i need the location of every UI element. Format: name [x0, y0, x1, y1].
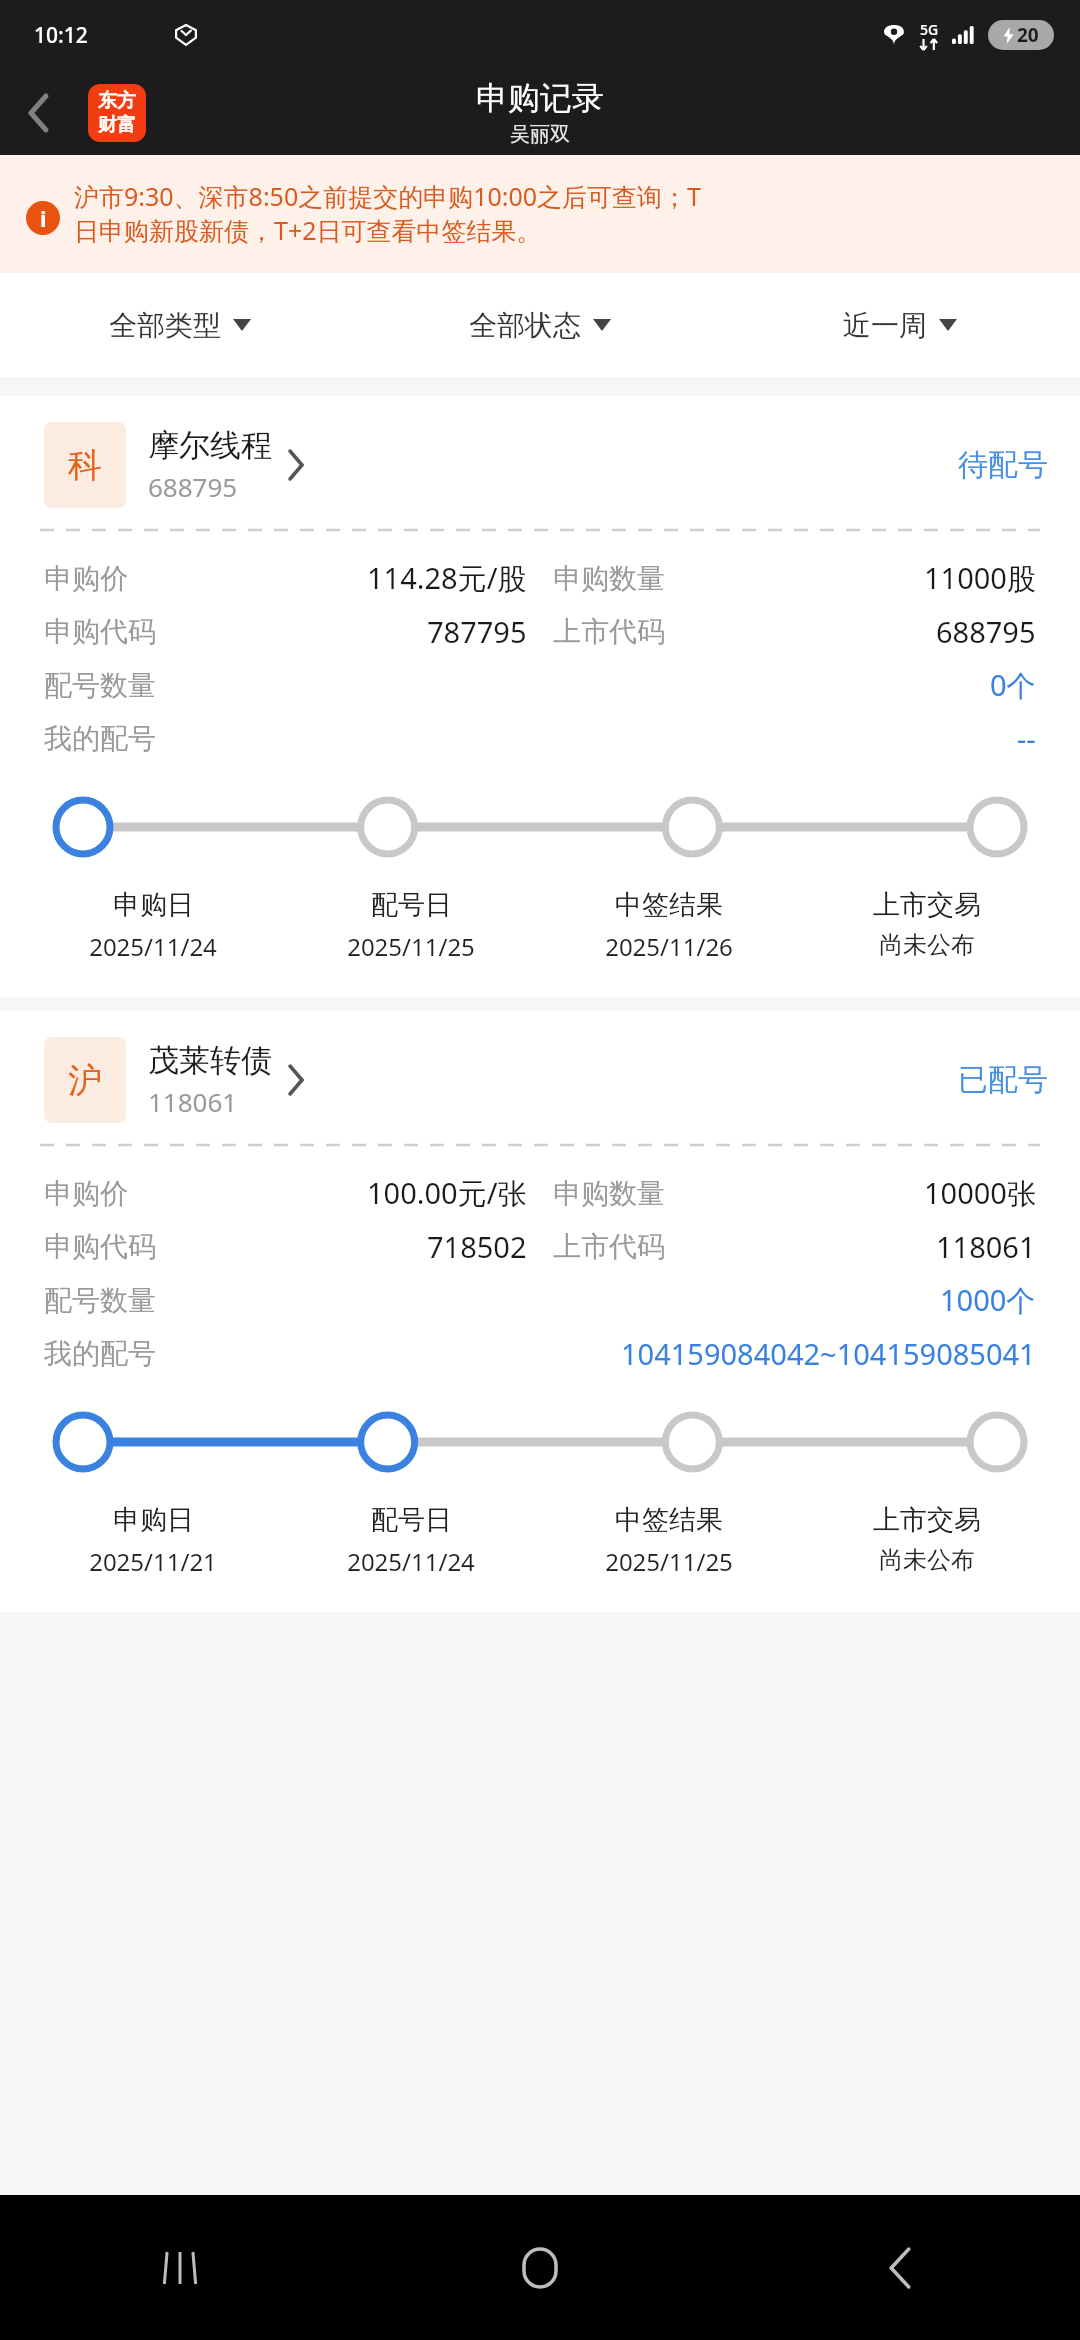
- staticText: 已配号: [958, 1061, 1048, 1099]
- staticText: 全部类型: [109, 308, 221, 343]
- staticText: 日申购新股新债，T+2日可查看中签结果。: [74, 213, 542, 247]
- staticText: 尚未公布: [879, 1545, 975, 1575]
- staticText: 全部状态: [469, 308, 581, 343]
- staticText: 0个: [990, 665, 1036, 705]
- staticText: 上市代码: [553, 1229, 665, 1264]
- staticText: 待配号: [958, 446, 1048, 484]
- staticText: 申购日: [113, 1503, 194, 1537]
- button[interactable]: 东方: [88, 84, 146, 142]
- staticText: 5G: [920, 20, 939, 39]
- button[interactable]: Recents: [0, 2195, 360, 2340]
- staticText: 申购代码: [44, 614, 156, 649]
- staticText: 11000股: [924, 558, 1036, 598]
- button[interactable]: 沪: [0, 1011, 1080, 1145]
- staticText: 近一周: [843, 308, 927, 343]
- staticText: 114.28元/股: [367, 558, 527, 598]
- button[interactable]: 近一周: [720, 273, 1080, 377]
- staticText: 中签结果: [615, 1503, 723, 1537]
- staticText: 104159084042~104159085041: [621, 1334, 1036, 1373]
- staticText: 配号数量: [44, 1283, 156, 1318]
- button[interactable]: Home: [360, 2195, 720, 2340]
- button[interactable]: 科: [0, 396, 1080, 530]
- staticText: 2025/11/25: [347, 930, 475, 963]
- staticText: 申购代码: [44, 1229, 156, 1264]
- staticText: 718502: [427, 1227, 527, 1266]
- staticText: 上市交易: [873, 888, 981, 922]
- staticText: --: [1017, 719, 1036, 758]
- staticText: 10000张: [924, 1173, 1036, 1213]
- staticText: 100.00元/张: [367, 1173, 527, 1213]
- staticText: 申购价: [44, 1176, 128, 1211]
- staticText: 2025/11/25: [605, 1545, 733, 1578]
- staticText: 118061: [936, 1227, 1036, 1266]
- staticText: 配号日: [371, 1503, 452, 1537]
- staticText: 2025/11/24: [347, 1545, 475, 1578]
- staticText: 10:12: [34, 21, 88, 50]
- staticText: 上市代码: [553, 614, 665, 649]
- staticText: 申购价: [44, 561, 128, 596]
- staticText: 我的配号: [44, 721, 156, 756]
- button[interactable]: 全部状态: [360, 273, 720, 377]
- staticText: 2025/11/24: [89, 930, 217, 963]
- staticText: 2025/11/21: [89, 1545, 217, 1578]
- staticText: 申购记录: [476, 78, 604, 118]
- staticText: 配号数量: [44, 668, 156, 703]
- staticText: 配号日: [371, 888, 452, 922]
- staticText: 吴丽双: [510, 122, 570, 147]
- staticText: 申购数量: [553, 1176, 665, 1211]
- staticText: 118061: [148, 1084, 238, 1119]
- staticText: 茂莱转债: [148, 1041, 272, 1080]
- staticText: 科: [68, 444, 102, 487]
- staticText: 沪: [68, 1059, 102, 1102]
- staticText: 中签结果: [615, 888, 723, 922]
- staticText: 787795: [427, 612, 527, 651]
- staticText: 688795: [148, 469, 238, 504]
- staticText: 摩尔线程: [148, 426, 272, 465]
- staticText: 东方: [98, 89, 136, 113]
- staticText: 20: [1017, 22, 1039, 48]
- staticText: 688795: [936, 612, 1036, 651]
- staticText: 沪市9:30、深市8:50之前提交的申购10:00之后可查询；T: [74, 179, 702, 213]
- staticText: 申购数量: [553, 561, 665, 596]
- staticText: 2025/11/26: [605, 930, 733, 963]
- button[interactable]: Back: [720, 2195, 1080, 2340]
- staticText: 尚未公布: [879, 930, 975, 960]
- staticText: 我的配号: [44, 1336, 156, 1371]
- staticText: 申购日: [113, 888, 194, 922]
- staticText: 上市交易: [873, 1503, 981, 1537]
- staticText: 财富: [98, 113, 136, 137]
- staticText: 1000个: [940, 1280, 1036, 1320]
- button[interactable]: 全部类型: [0, 273, 360, 377]
- staticText: i: [40, 203, 47, 233]
- button[interactable]: Back: [0, 70, 78, 155]
